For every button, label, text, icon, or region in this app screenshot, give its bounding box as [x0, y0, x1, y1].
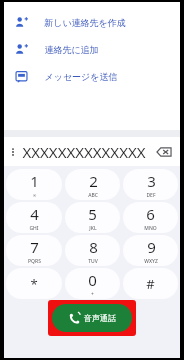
button[interactable]: * [6, 268, 62, 299]
button[interactable]: 6 [123, 202, 178, 233]
staticText: WXYZ [144, 258, 158, 265]
staticText: 4 [30, 204, 39, 224]
button[interactable]: 音声通話 [52, 304, 132, 332]
button[interactable]: More options [4, 143, 22, 161]
staticText: XXXXXXXXXXXXXX [22, 142, 146, 162]
button[interactable]: 9 [123, 235, 178, 266]
staticText: JKL [89, 225, 97, 232]
staticText: GHI [29, 225, 39, 232]
staticText: 9 [147, 237, 156, 257]
button[interactable]: # [123, 268, 178, 299]
button[interactable]: 0 [65, 268, 120, 299]
button[interactable]: 4 [6, 202, 62, 233]
button[interactable]: XXXXXXXXXXXXXX [22, 142, 151, 162]
staticText: DEF [146, 192, 156, 199]
staticText: 3 [147, 171, 156, 191]
button[interactable]: 1 [6, 169, 62, 200]
staticText: TUV [88, 258, 98, 265]
staticText: 1 [30, 171, 39, 191]
button[interactable]: 8 [65, 235, 120, 266]
staticText: ∞ [32, 192, 37, 198]
button[interactable]: 新しい連絡先を作成 [4, 9, 180, 36]
staticText: # [146, 275, 155, 293]
staticText: 音声通話 [84, 313, 116, 323]
staticText: + [91, 291, 94, 298]
staticText: メッセージを送信 [44, 71, 118, 82]
button[interactable]: 3 [123, 169, 178, 200]
button[interactable]: 5 [65, 202, 120, 233]
button[interactable]: メッセージを送信 [4, 63, 180, 90]
button[interactable]: 連絡先に追加 [4, 36, 180, 63]
staticText: 7 [30, 237, 39, 257]
staticText: MNO [144, 225, 157, 232]
button[interactable]: 7 [6, 235, 62, 266]
staticText: * [30, 275, 38, 293]
staticText: PQRS [28, 258, 41, 265]
staticText: 5 [88, 204, 97, 224]
staticText: ABC [88, 192, 98, 199]
button[interactable]: Backspace [151, 139, 177, 165]
staticText: 8 [89, 237, 98, 257]
staticText: 0 [88, 270, 97, 290]
button[interactable]: 2 [65, 169, 120, 200]
staticText: 2 [89, 171, 98, 191]
staticText: 6 [146, 204, 155, 224]
staticText: 連絡先に追加 [44, 44, 99, 55]
staticText: 新しい連絡先を作成 [44, 17, 126, 28]
